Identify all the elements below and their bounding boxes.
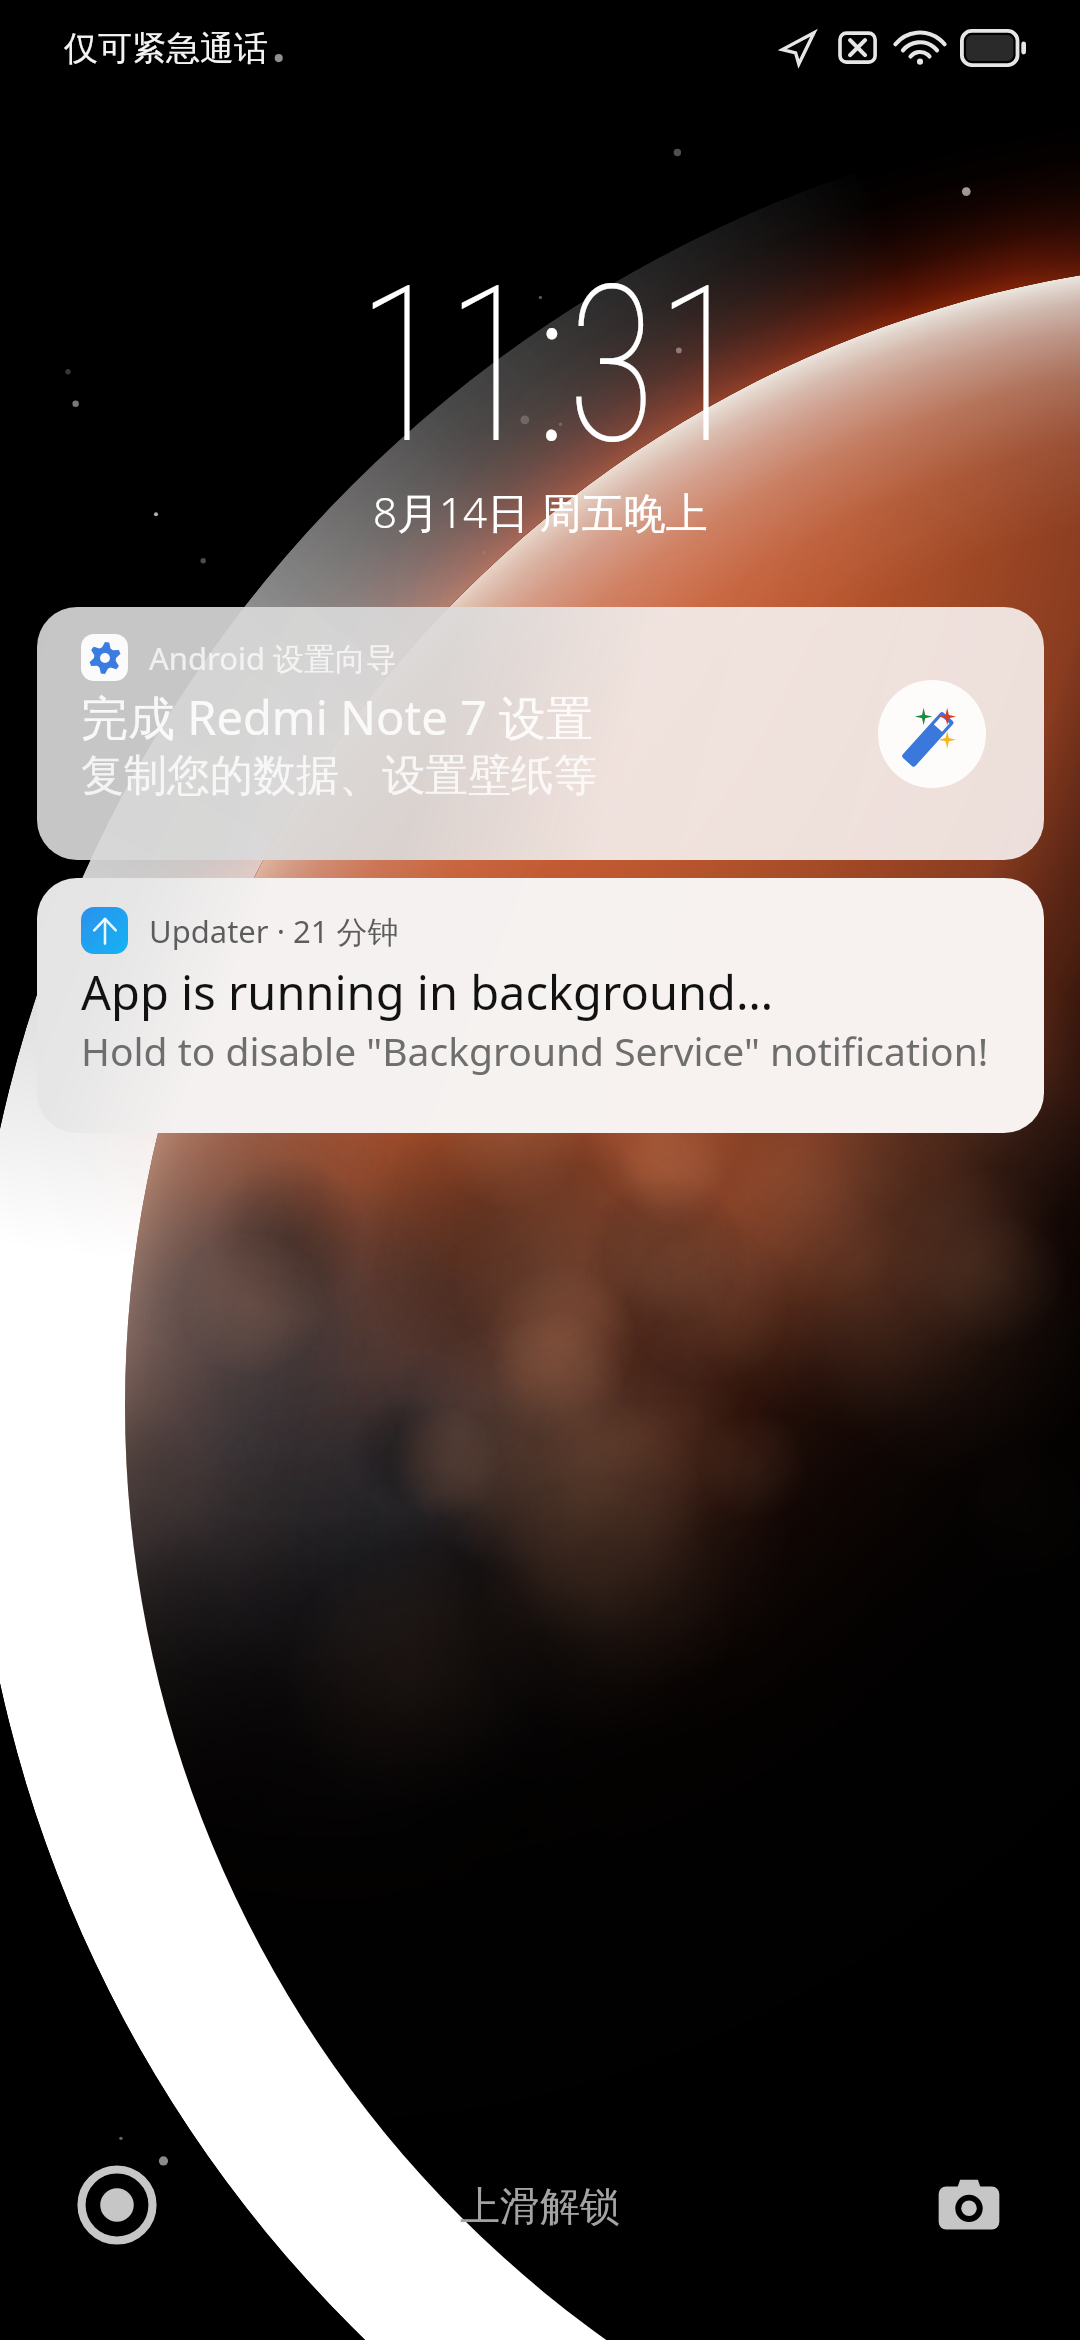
staticText: Updater · 21 分钟 [149,910,399,952]
button[interactable]: Camera [914,2150,1024,2260]
staticText: Hold to disable "Background Service" not… [81,1024,989,1077]
button[interactable]: Finish setup [878,680,986,788]
staticText: 仅可紧急通话 [64,27,268,70]
button[interactable]: Updater · 21 分钟 [37,878,1044,1133]
button[interactable]: Android 设置向导 [37,607,1044,860]
button[interactable]: Flashlight [62,2150,172,2260]
staticText: Android 设置向导 [149,637,398,679]
staticText: 11:31 [357,238,745,493]
staticText: 完成 Redmi Note 7 设置 [81,685,594,749]
staticText: 复制您的数据、设置壁纸等 [81,749,597,803]
staticText: App is running in background… [81,960,774,1024]
staticText: 上滑解锁 [460,2181,620,2231]
staticText: 8月14日 周五晚上 [373,483,708,540]
